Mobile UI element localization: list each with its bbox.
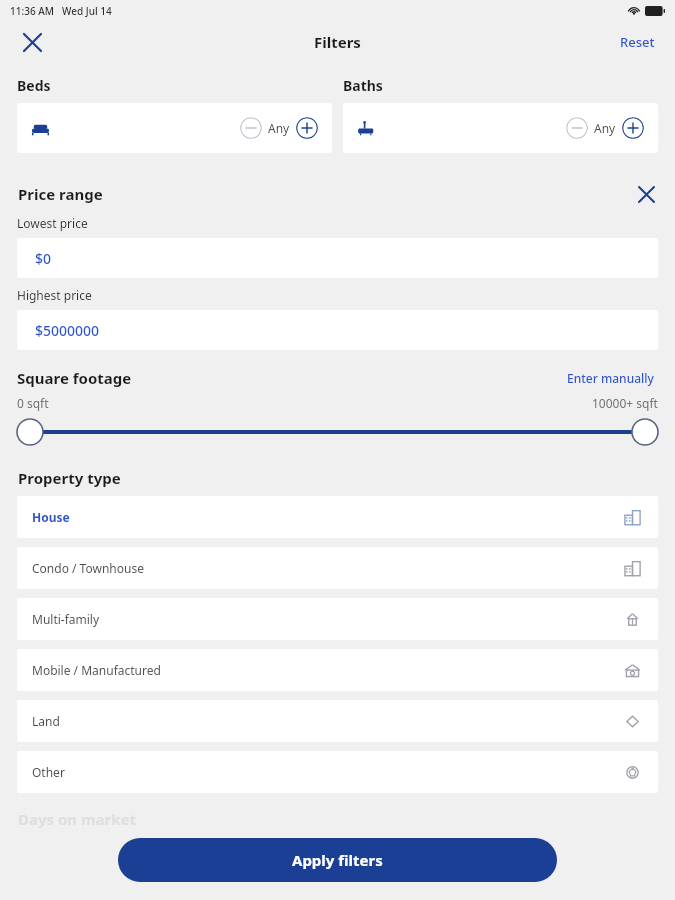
staticText: Highest price	[17, 287, 92, 303]
button[interactable]: Square footage range slider	[17, 418, 658, 446]
staticText: Mobile / Manufactured	[32, 662, 161, 678]
staticText: Reset	[620, 33, 655, 51]
staticText: Multi-family	[32, 611, 100, 627]
button[interactable]: Increase	[622, 117, 644, 139]
staticText: Any	[268, 120, 290, 136]
button[interactable]: Reset	[614, 27, 661, 57]
staticText: Filters	[314, 32, 361, 52]
button[interactable]: Condo / Townhouse	[17, 547, 658, 589]
staticText: 0 sqft	[17, 395, 49, 411]
staticText: $0	[35, 249, 52, 268]
staticText: Lowest price	[17, 215, 88, 231]
button[interactable]: Multi-family	[17, 598, 658, 640]
staticText: Square footage	[17, 368, 132, 388]
button[interactable]: Apply filters	[118, 838, 557, 882]
staticText: 11:36 AM	[10, 4, 54, 18]
button[interactable]: $0	[17, 238, 658, 278]
staticText: Baths	[343, 76, 383, 95]
button[interactable]: Increase	[296, 117, 318, 139]
button[interactable]: Enter manually	[563, 366, 658, 390]
staticText: Days on market	[18, 809, 137, 829]
button[interactable]: Clear price range	[631, 179, 661, 209]
staticText: Other	[32, 764, 65, 780]
button[interactable]: Close	[16, 26, 48, 58]
staticText: $5000000	[35, 321, 100, 340]
button[interactable]: Land	[17, 700, 658, 742]
button[interactable]: $5000000	[17, 310, 658, 350]
staticText: Land	[32, 713, 60, 729]
staticText: 10000+ sqft	[592, 395, 658, 411]
button[interactable]: Decrease	[566, 117, 588, 139]
staticText: Property type	[18, 468, 121, 488]
button[interactable]: Decrease	[240, 117, 262, 139]
staticText: Apply filters	[292, 850, 383, 870]
button[interactable]: Other	[17, 751, 658, 793]
staticText: Enter manually	[567, 370, 654, 386]
staticText: Beds	[17, 76, 51, 95]
staticText: Wed Jul 14	[62, 4, 112, 18]
button[interactable]: Mobile / Manufactured	[17, 649, 658, 691]
staticText: Price range	[18, 184, 103, 204]
button[interactable]: House	[17, 496, 658, 538]
staticText: Any	[594, 120, 616, 136]
staticText: Condo / Townhouse	[32, 560, 144, 576]
staticText: House	[32, 509, 70, 525]
